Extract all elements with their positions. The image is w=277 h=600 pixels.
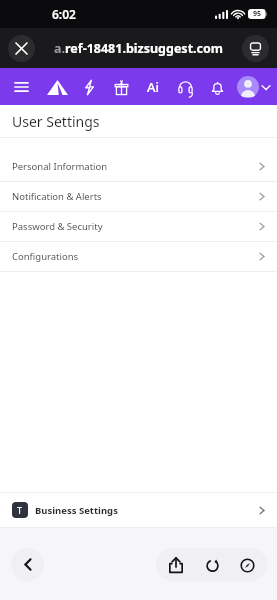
button[interactable]: Close: [8, 35, 35, 62]
button[interactable]: Tabs: [242, 35, 269, 62]
staticText: a.ref-18481.bizsuggest.com: [54, 40, 224, 57]
staticText: Password & Security: [12, 220, 103, 233]
staticText: Ai: [147, 78, 160, 96]
button[interactable]: T: [0, 493, 277, 527]
button[interactable]: Explore: [232, 550, 262, 580]
button[interactable]: Personal Information: [0, 152, 277, 181]
button[interactable]: Share: [161, 550, 191, 580]
staticText: Notification & Alerts: [12, 190, 102, 203]
button[interactable]: Configurations: [0, 242, 277, 271]
button[interactable]: Home: [44, 74, 70, 100]
button[interactable]: Support: [174, 76, 196, 98]
button[interactable]: Notifications: [206, 76, 228, 98]
button[interactable]: Boost: [78, 76, 100, 98]
button[interactable]: Back: [11, 548, 44, 581]
staticText: 95: [253, 9, 262, 19]
button[interactable]: Menu: [10, 76, 32, 98]
button[interactable]: Account: [237, 76, 270, 98]
staticText: User Settings: [12, 112, 100, 131]
staticText: T: [17, 504, 23, 516]
button[interactable]: Gifts: [110, 76, 132, 98]
staticText: Configurations: [12, 250, 79, 263]
staticText: Business Settings: [35, 504, 118, 517]
button[interactable]: Notification & Alerts: [0, 182, 277, 211]
button[interactable]: Reload: [197, 550, 227, 580]
staticText: 6:02: [52, 6, 76, 22]
staticText: Personal Information: [12, 160, 108, 173]
button[interactable]: AI: [142, 76, 164, 98]
button[interactable]: Password & Security: [0, 212, 277, 241]
